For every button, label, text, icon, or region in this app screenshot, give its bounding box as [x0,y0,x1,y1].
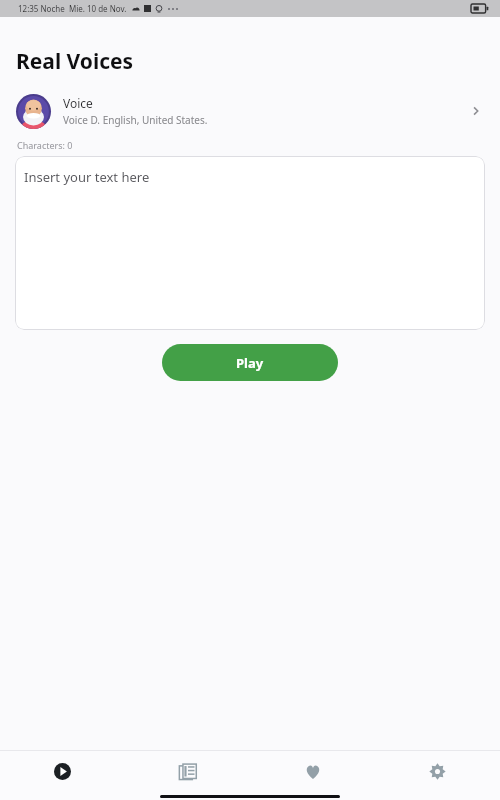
other: Open voice selection [470,104,484,118]
staticText: Voice D. English, United States. [63,113,208,127]
staticText: 12:35 Noche Mie. 10 de Nov. [18,3,127,14]
button[interactable]: Settings [375,751,500,792]
button[interactable]: Insert your text here [15,156,485,330]
button[interactable]: Play [0,751,125,792]
staticText: Voice [63,95,93,111]
button[interactable]: Favorites [250,751,375,792]
staticText: Characters: 0 [17,139,73,151]
button[interactable]: Play [162,344,338,381]
staticText: Insert your text here [24,168,150,186]
staticText: Play [236,354,264,372]
button[interactable]: Voice [0,91,500,131]
button[interactable]: Library [125,751,250,792]
staticText: Real Voices [16,47,134,76]
